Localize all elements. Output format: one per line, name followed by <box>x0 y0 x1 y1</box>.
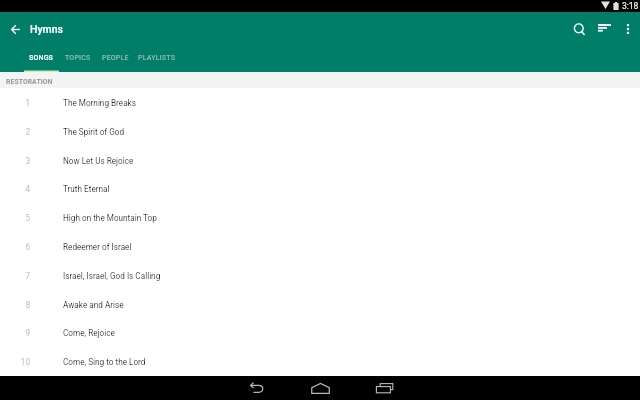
button[interactable]: Home <box>288 376 352 400</box>
staticText: 1 <box>25 98 30 108</box>
staticText: 5 <box>25 213 30 223</box>
staticText: Come, Rejoice <box>63 328 115 338</box>
staticText: 7 <box>25 271 30 281</box>
staticText: Awake and Arise <box>63 300 124 310</box>
staticText: 4 <box>25 184 30 194</box>
button[interactable]: 4 <box>0 174 640 203</box>
button[interactable]: More options <box>616 12 640 48</box>
staticText: The Morning Breaks <box>63 98 136 108</box>
button[interactable]: Back <box>0 12 30 48</box>
staticText: TOPICS <box>65 54 91 62</box>
button[interactable]: Search <box>568 12 592 48</box>
staticText: High on the Mountain Top <box>63 213 157 223</box>
staticText: 8 <box>25 300 30 310</box>
button[interactable]: 6 <box>0 232 640 261</box>
button[interactable]: Sort <box>592 12 616 48</box>
staticText: 3:18 <box>622 1 639 11</box>
staticText: 6 <box>25 242 30 252</box>
staticText: RESTORATION <box>6 78 53 86</box>
staticText: The Spirit of God <box>63 127 125 137</box>
staticText: Now Let Us Rejoice <box>63 156 134 166</box>
button[interactable]: SONGS <box>24 48 59 72</box>
staticText: Truth Eternal <box>63 184 110 194</box>
staticText: PLAYLISTS <box>138 54 176 62</box>
staticText: Redeemer of Israel <box>63 242 132 252</box>
button[interactable]: Recents <box>352 376 416 400</box>
staticText: Israel, Israel, God Is Calling <box>63 271 161 281</box>
staticText: Hymns <box>30 23 63 35</box>
button[interactable]: Back <box>224 376 288 400</box>
button[interactable]: 7 <box>0 261 640 290</box>
button[interactable]: 9 <box>0 318 640 347</box>
button[interactable]: PEOPLE <box>96 48 134 72</box>
staticText: Come, Sing to the Lord <box>63 357 146 367</box>
staticText: 2 <box>25 127 30 137</box>
staticText: SONGS <box>29 54 54 62</box>
button[interactable]: 2 <box>0 117 640 146</box>
staticText: 9 <box>25 328 30 338</box>
staticText: PEOPLE <box>102 54 129 62</box>
button[interactable]: 5 <box>0 203 640 232</box>
button[interactable]: 3 <box>0 146 640 175</box>
button[interactable]: PLAYLISTS <box>134 48 179 72</box>
button[interactable]: 10 <box>0 347 640 376</box>
button[interactable]: 1 <box>0 88 640 117</box>
button[interactable]: 8 <box>0 290 640 319</box>
button[interactable]: TOPICS <box>59 48 96 72</box>
staticText: 10 <box>20 357 30 367</box>
staticText: 3 <box>25 156 30 166</box>
